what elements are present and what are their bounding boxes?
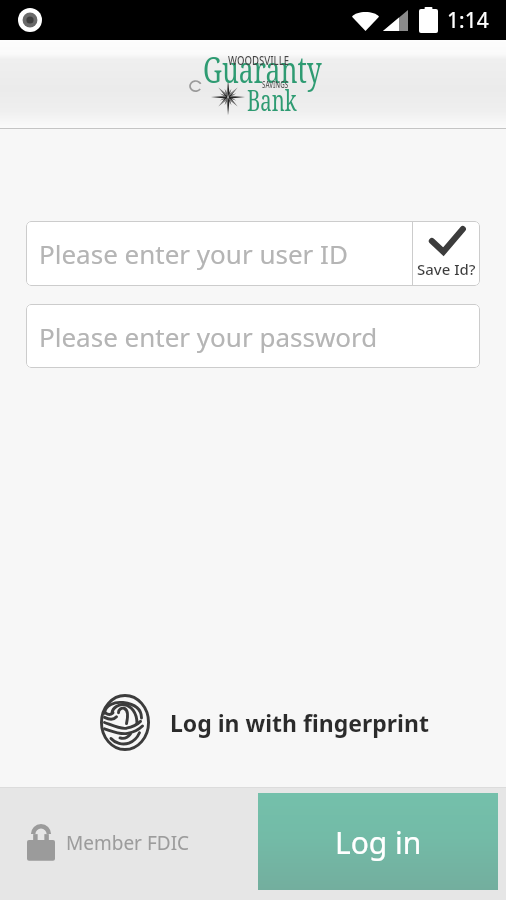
staticText: Please enter your user ID (39, 236, 348, 271)
button[interactable]: Please enter your user ID (26, 221, 412, 286)
staticText: SAVINGS (262, 79, 465, 90)
button[interactable]: Log in with fingerprint (100, 694, 429, 751)
button[interactable]: Log in (258, 793, 498, 890)
staticText: Log in (335, 822, 422, 863)
staticText: Please enter your password (39, 319, 378, 354)
staticText: Guaranty (203, 45, 394, 94)
button[interactable]: Please enter your password (26, 304, 480, 368)
staticText: Member FDIC (66, 830, 190, 856)
staticText: 1:14 (447, 6, 489, 35)
staticText: Bank (247, 80, 429, 119)
button[interactable]: Save Id? (413, 221, 480, 286)
other: Log in with fingerprint (100, 694, 150, 751)
staticText: WOODSVILLE (228, 52, 436, 68)
staticText: Log in with fingerprint (170, 707, 429, 738)
staticText: Save Id? (417, 259, 476, 279)
